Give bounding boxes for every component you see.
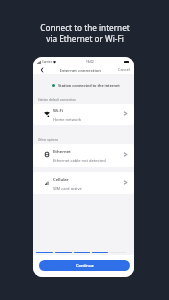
staticText: Internet connection	[60, 67, 101, 73]
staticText: Home network	[53, 117, 82, 123]
staticText: Ethernet cable not detected	[53, 158, 106, 164]
staticText: Carrier	[42, 60, 52, 64]
staticText: Other options	[38, 138, 58, 142]
staticText: Connect to the internet via Ethernet or …	[40, 22, 130, 45]
staticText: SIM card active	[53, 186, 82, 192]
staticText: Station default connection	[38, 98, 76, 102]
staticText: Cancel	[118, 67, 130, 72]
staticText: Continue	[76, 263, 94, 268]
staticText: Wi-Fi	[53, 108, 63, 114]
button[interactable]: Cancel	[118, 67, 130, 72]
button[interactable]: Wi-Fi	[33, 104, 134, 125]
staticText: Ethernet	[53, 149, 71, 155]
button[interactable]: Continue	[39, 260, 130, 271]
button[interactable]: Ethernet	[33, 144, 134, 167]
staticText: Station connected to the internet	[58, 83, 120, 88]
button[interactable]: Cellular	[33, 172, 134, 194]
staticText: 16:02	[86, 60, 94, 64]
staticText: Cellular	[53, 177, 69, 183]
button[interactable]: Back	[37, 65, 46, 74]
